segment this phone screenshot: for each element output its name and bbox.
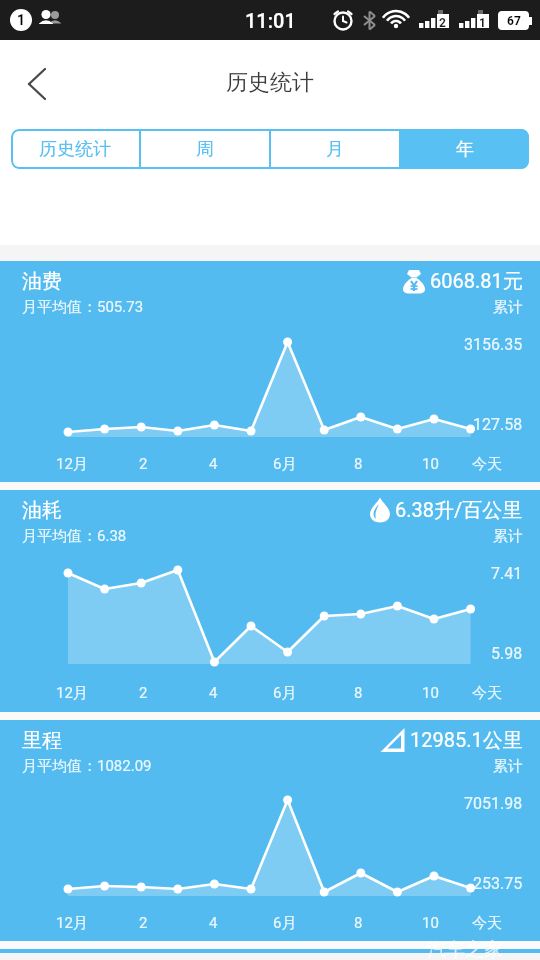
staticText: 4 [209, 684, 218, 702]
staticText: 6月 [273, 455, 297, 474]
button[interactable]: 月 [271, 129, 399, 169]
staticText: 月 [326, 138, 344, 161]
staticText: 月平均值：6.38 [22, 527, 127, 546]
staticText: 年 [456, 138, 474, 161]
staticText: 253.75 [473, 874, 523, 893]
staticText: 累计 [493, 527, 523, 546]
staticText: 6月 [273, 684, 297, 703]
staticText: 12月 [56, 914, 88, 933]
staticText: 2 [139, 914, 148, 932]
staticText: 2 [139, 684, 148, 702]
staticText: 今天 [472, 455, 502, 474]
staticText: 11:01 [245, 9, 296, 32]
staticText: 10 [422, 914, 439, 932]
staticText: 8 [354, 684, 363, 702]
staticText: 6.38升/百公里 [395, 498, 523, 523]
button[interactable]: 油耗 [0, 490, 540, 712]
button[interactable]: 油费 [0, 261, 540, 482]
staticText: 今天 [472, 684, 502, 703]
staticText: 12月 [56, 455, 88, 474]
staticText: 2 [139, 455, 148, 473]
staticText: 4 [209, 455, 218, 473]
staticText: 10 [422, 455, 439, 473]
staticText: 12月 [56, 684, 88, 703]
staticText: 5.98 [491, 644, 523, 663]
button[interactable]: 历史统计 [11, 129, 139, 169]
staticText: 月平均值：505.73 [22, 298, 144, 317]
staticText: 12985.1公里 [410, 728, 523, 753]
button[interactable]: 年 [401, 129, 529, 169]
staticText: 今天 [472, 914, 502, 933]
button[interactable] [14, 66, 58, 102]
staticText: 3156.35 [464, 335, 523, 354]
staticText: 127.58 [473, 415, 523, 434]
staticText: 6068.81元 [430, 269, 523, 294]
staticText: 1 [479, 16, 486, 30]
staticText: 周 [196, 138, 214, 161]
staticText: 汽车之家 [427, 938, 503, 960]
staticText: 历史统计 [226, 69, 314, 97]
staticText: 月平均值：1082.09 [22, 757, 152, 776]
staticText: 6月 [273, 914, 297, 933]
staticText: 里程 [22, 728, 62, 753]
staticText: 2 [439, 16, 446, 30]
staticText: 累计 [493, 298, 523, 317]
staticText: 油费 [22, 269, 62, 294]
staticText: 8 [354, 455, 363, 473]
staticText: 67 [507, 14, 521, 28]
staticText: 历史统计 [39, 138, 111, 161]
staticText: 1 [17, 12, 26, 28]
staticText: 4 [209, 914, 218, 932]
staticText: 7051.98 [464, 794, 523, 813]
staticText: 7.41 [491, 564, 523, 583]
button[interactable]: 里程 [0, 720, 540, 941]
button[interactable]: 周 [141, 129, 269, 169]
staticText: 累计 [493, 757, 523, 776]
staticText: 8 [354, 914, 363, 932]
staticText: 油耗 [22, 498, 62, 523]
staticText: 10 [422, 684, 439, 702]
